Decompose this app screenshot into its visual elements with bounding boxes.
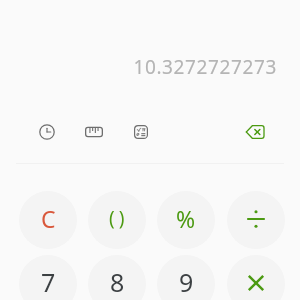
button[interactable]: Unit converter bbox=[78, 116, 110, 148]
staticText: 8 bbox=[110, 265, 125, 299]
button[interactable]: 8 bbox=[88, 255, 146, 300]
button[interactable]: C bbox=[19, 191, 77, 249]
button[interactable]: 9 bbox=[157, 255, 215, 300]
button[interactable]: Backspace bbox=[239, 116, 271, 148]
button[interactable]: Formulas bbox=[125, 116, 157, 148]
staticText: () bbox=[109, 205, 129, 231]
staticText: 9 bbox=[179, 265, 194, 299]
button[interactable]: History bbox=[31, 116, 63, 148]
button[interactable]: Divide bbox=[227, 191, 285, 249]
staticText: C bbox=[41, 203, 56, 234]
staticText: 10.3272727273 bbox=[133, 54, 277, 80]
button[interactable]: % bbox=[157, 191, 215, 249]
button[interactable]: () bbox=[88, 191, 146, 249]
staticText: 7 bbox=[41, 265, 56, 299]
button[interactable]: 7 bbox=[19, 255, 77, 300]
button[interactable]: Multiply bbox=[227, 255, 285, 300]
staticText: % bbox=[176, 203, 196, 234]
